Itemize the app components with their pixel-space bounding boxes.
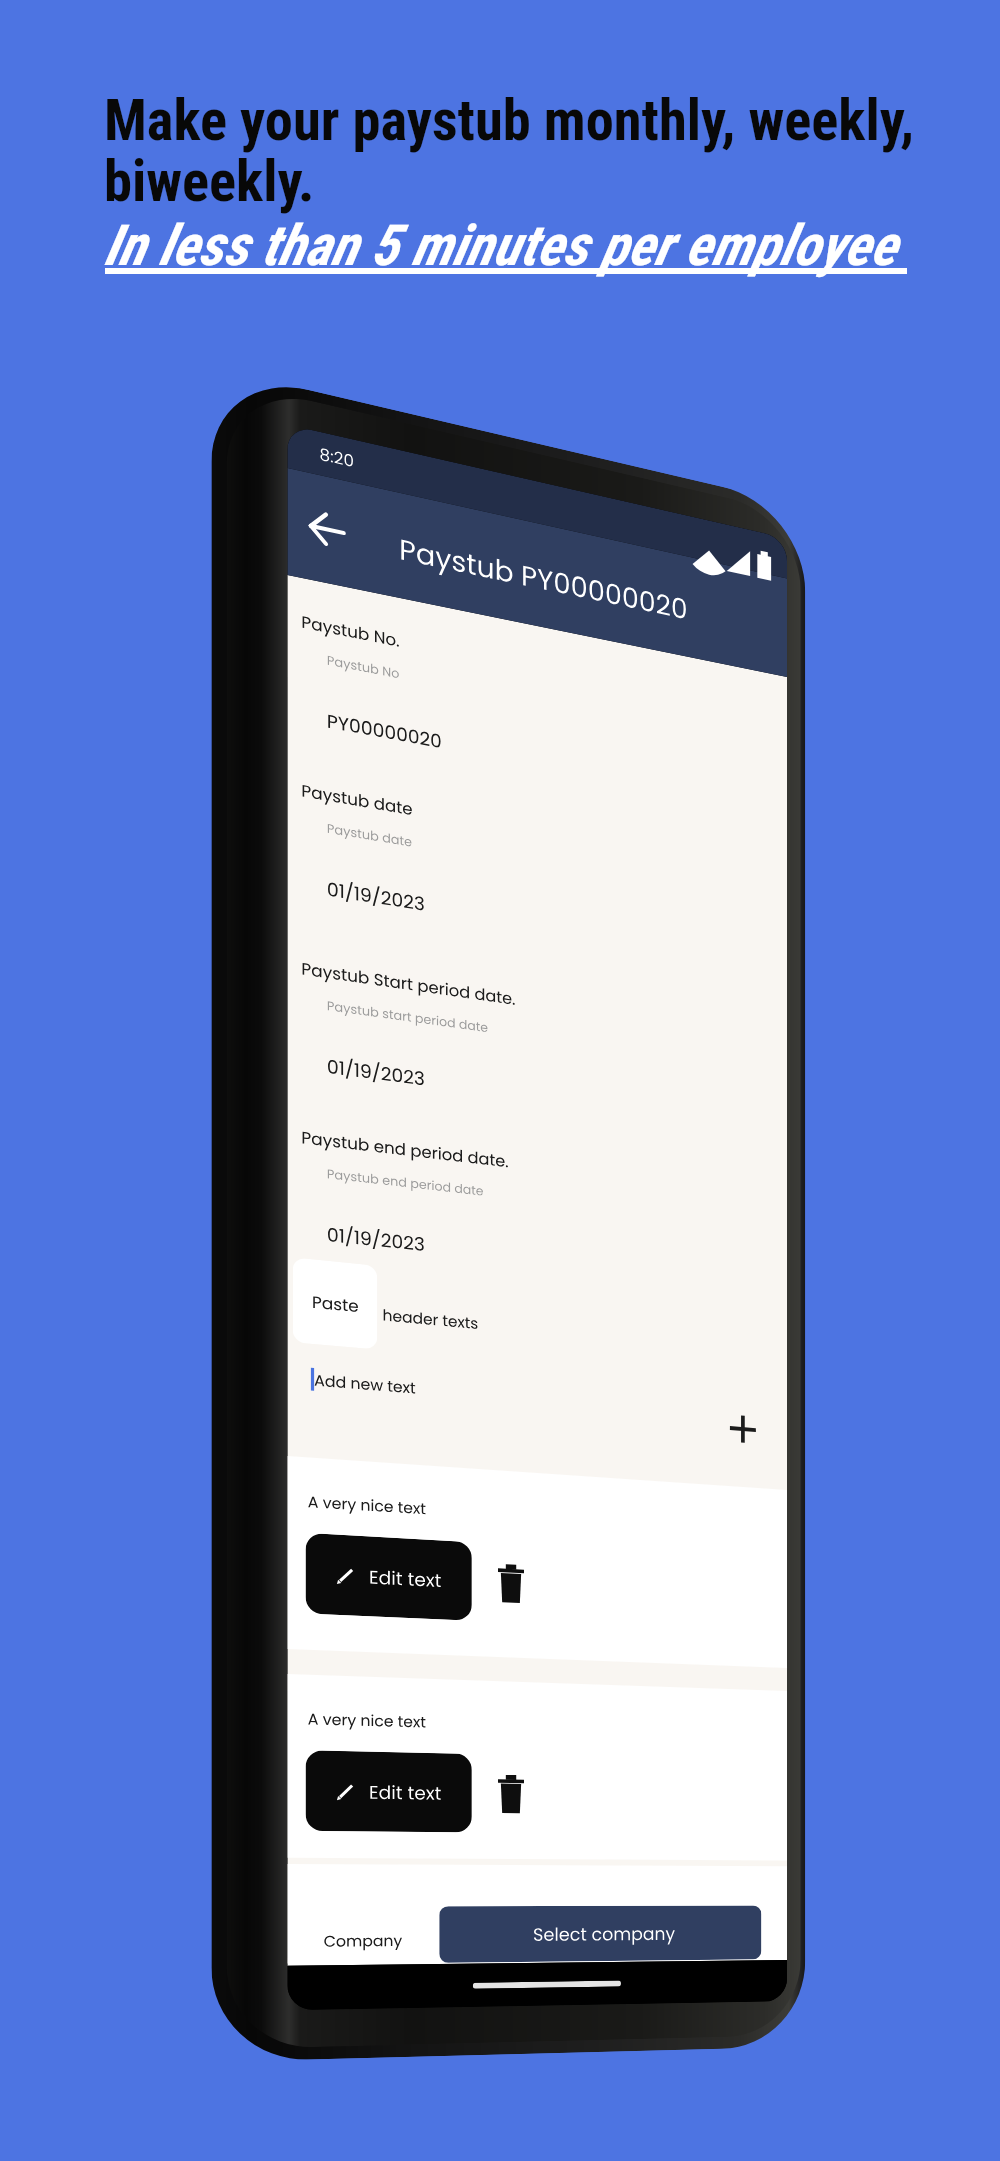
button[interactable]: Delete (498, 1773, 524, 1814)
button[interactable]: Delete (498, 1563, 524, 1604)
staticText: 01/19/2023 (327, 1053, 425, 1092)
button[interactable]: Edit text (306, 1750, 472, 1832)
button[interactable]: Add text (730, 1414, 756, 1443)
staticText: Paystub date (301, 779, 412, 820)
staticText: Select company (533, 1921, 675, 1947)
staticText: Edit text (369, 1779, 442, 1806)
staticText: Paystub date (327, 819, 412, 851)
staticText: Paystub PY00000020 (399, 529, 688, 629)
staticText: Company (324, 1930, 402, 1952)
staticText: A very nice text (308, 1491, 426, 1519)
staticText: In less than 5 minutes per employee (104, 213, 897, 279)
staticText: Paystub No. (301, 610, 400, 652)
staticText: header texts (382, 1304, 479, 1334)
staticText: Paste (312, 1290, 359, 1317)
button[interactable]: Paste (293, 1257, 377, 1350)
staticText: Paystub end period date (327, 1165, 484, 1200)
staticText: Make your paystub monthly, weekly, (104, 88, 915, 154)
button[interactable]: Edit text (306, 1533, 472, 1621)
staticText: Paystub Start period date. (301, 957, 516, 1010)
staticText: 01/19/2023 (327, 1221, 425, 1257)
button[interactable]: Back (304, 503, 349, 556)
staticText: Edit text (369, 1564, 442, 1593)
staticText: Add new text (314, 1369, 417, 1399)
staticText: 8:20 (319, 442, 354, 473)
staticText: 01/19/2023 (327, 876, 425, 917)
staticText: Paystub No (327, 651, 400, 683)
staticText: A very nice text (308, 1708, 426, 1732)
staticText: biweekly. (104, 149, 315, 215)
staticText: Paystub end period date. (301, 1126, 509, 1172)
staticText: PY00000020 (327, 708, 442, 754)
staticText: Paystub start period date (327, 997, 489, 1036)
button[interactable]: Select company (439, 1905, 761, 1963)
